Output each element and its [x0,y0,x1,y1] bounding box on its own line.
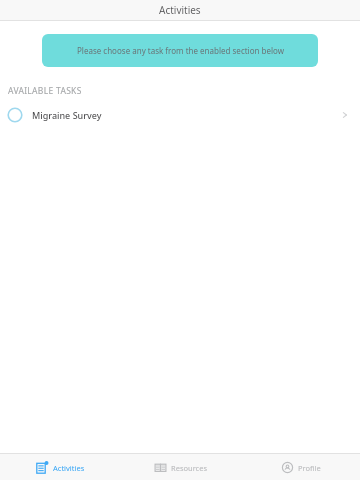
button[interactable]: Activities [0,454,120,480]
staticText: Resources [171,463,208,473]
staticText: Please choose any task from the enabled … [77,45,284,56]
button[interactable]: Resources [120,454,240,480]
button[interactable]: Migraine Survey [0,100,360,130]
button[interactable]: Profile [240,454,360,480]
staticText: Activities [53,463,85,473]
staticText: Profile [298,463,321,473]
staticText: Activities [159,3,201,17]
staticText: AVAILABLE TASKS [8,85,82,97]
button[interactable]: Please choose any task from the enabled … [42,34,318,67]
staticText: Migraine Survey [32,109,102,121]
